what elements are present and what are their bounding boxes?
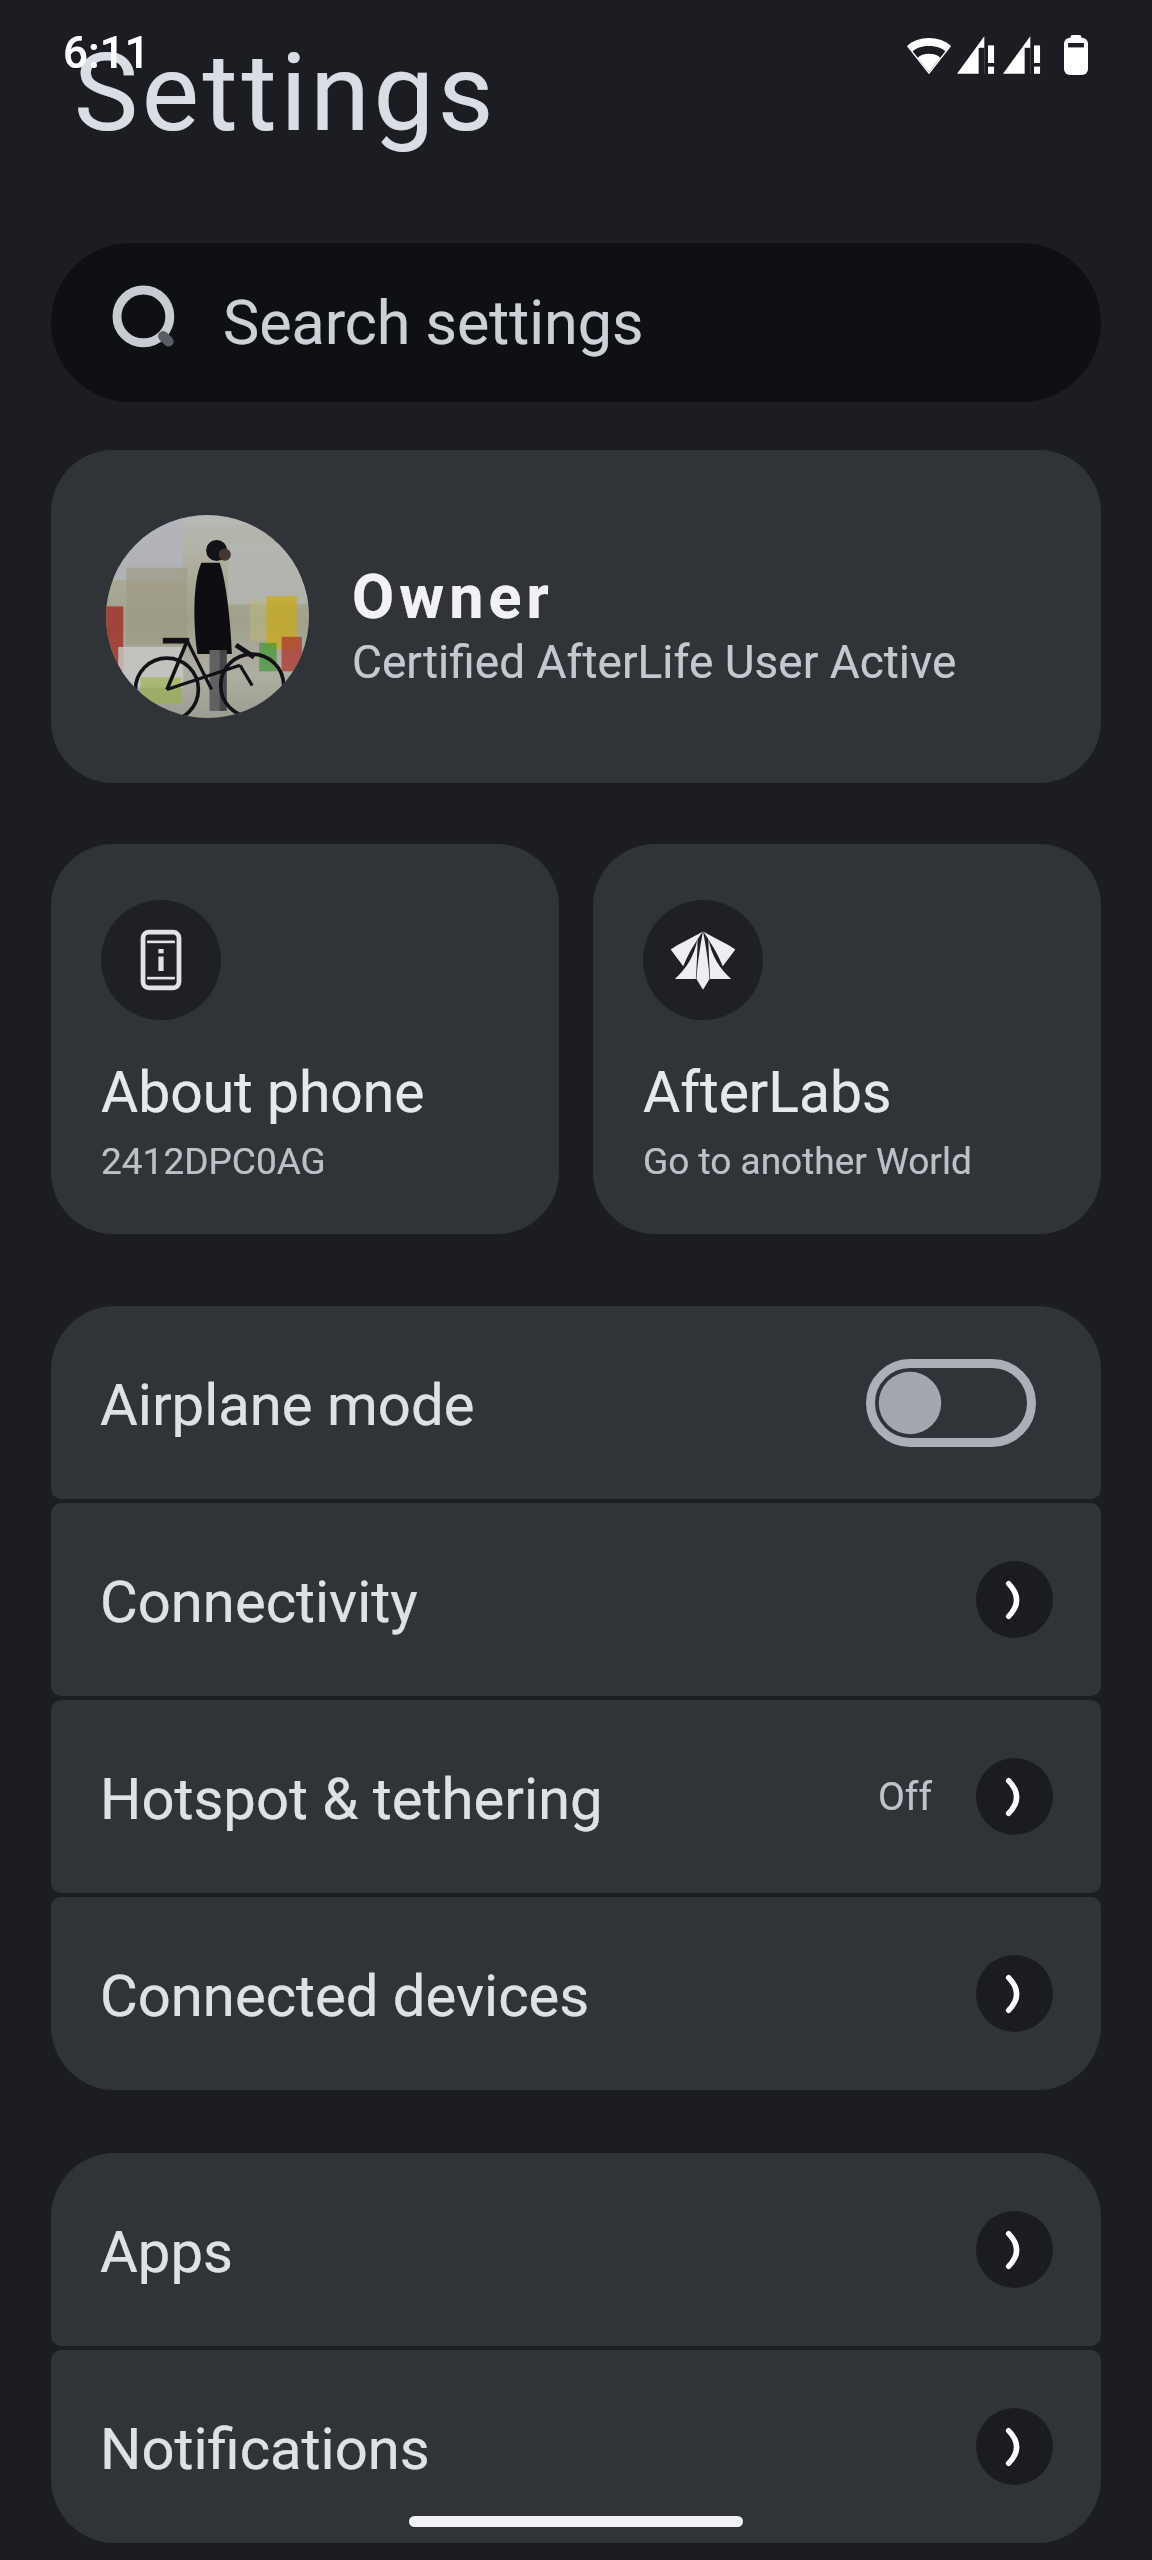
staticText: Search settings	[223, 287, 644, 358]
staticText: Hotspot & tethering	[100, 1765, 603, 1833]
other: Connectivity	[976, 1561, 1053, 1638]
staticText: Notifications	[100, 2415, 430, 2483]
staticText: Owner	[352, 561, 554, 632]
staticText: Off	[878, 1774, 932, 1820]
other: Hotspot & tethering	[976, 1758, 1053, 1835]
button[interactable]: Toggle Airplane mode	[866, 1359, 1036, 1447]
button[interactable]: Owner	[51, 450, 1101, 783]
button[interactable]: Connectivity	[51, 1503, 1101, 1696]
staticText: About phone	[101, 1059, 425, 1126]
staticText: AfterLabs	[643, 1059, 892, 1126]
button[interactable]: Connected devices	[51, 1897, 1101, 2090]
staticText: 6:11	[63, 27, 150, 79]
other: Notifications	[976, 2408, 1053, 2485]
button[interactable]: About phone	[51, 844, 559, 1234]
staticText: 2412DPC0AG	[101, 1140, 326, 1183]
button[interactable]: Apps	[51, 2153, 1101, 2346]
button[interactable]: AfterLabs	[593, 844, 1101, 1234]
staticText: Apps	[100, 2218, 233, 2286]
staticText: Settings	[74, 30, 498, 157]
staticText: Certified AfterLife User Active	[352, 635, 957, 689]
staticText: Connectivity	[100, 1568, 418, 1636]
other: Apps	[976, 2211, 1053, 2288]
button[interactable]: Hotspot & tethering	[51, 1700, 1101, 1893]
button[interactable]: Airplane mode	[51, 1306, 1101, 1499]
staticText: Airplane mode	[100, 1371, 475, 1439]
button[interactable]: Search settings	[51, 243, 1101, 402]
other: Connected devices	[976, 1955, 1053, 2032]
staticText: Connected devices	[100, 1962, 590, 2030]
button[interactable]: Notifications	[51, 2350, 1101, 2543]
staticText: Go to another World	[643, 1140, 972, 1183]
